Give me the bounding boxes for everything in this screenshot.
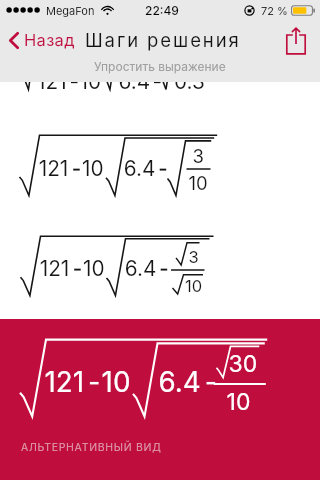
staticText: АЛЬТЕРНАТИВНЫЙ ВИД [21, 441, 162, 454]
staticText: Шаги решения [85, 29, 241, 51]
button[interactable]: Share [280, 20, 312, 60]
staticText: 72 % [261, 4, 288, 17]
staticText: 22:49 [145, 3, 179, 18]
staticText: Назад [24, 30, 75, 50]
button[interactable]: Назад [0, 24, 81, 56]
staticText: MegaFon [46, 4, 95, 17]
staticText: Упростить выражение [94, 59, 226, 74]
